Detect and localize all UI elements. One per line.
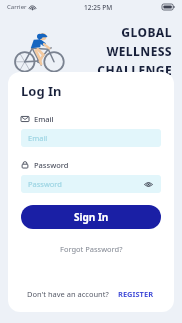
button[interactable]: Email xyxy=(21,129,161,147)
staticText: GLOBAL xyxy=(121,24,172,40)
staticText: Password xyxy=(34,160,69,170)
staticText: REGISTER xyxy=(118,289,154,299)
staticText: Password xyxy=(28,179,62,189)
button[interactable]: Sign In xyxy=(21,205,161,229)
staticText: Email xyxy=(34,114,54,124)
staticText: CHALLENGE xyxy=(97,62,172,78)
button[interactable]: REGISTER xyxy=(116,288,156,300)
button[interactable]: Show password xyxy=(143,179,154,190)
staticText: Log In xyxy=(21,82,62,100)
staticText: Email xyxy=(28,133,48,143)
button[interactable]: Forgot Password? xyxy=(56,242,127,256)
button[interactable]: Password xyxy=(21,175,161,193)
staticText: Carrier xyxy=(7,3,27,11)
staticText: Sign In xyxy=(74,210,109,224)
staticText: WELLNESS xyxy=(106,43,172,59)
staticText: 12:25 PM xyxy=(84,3,113,12)
staticText: Don't have an account? xyxy=(27,289,109,299)
staticText: Forgot Password? xyxy=(60,244,123,254)
